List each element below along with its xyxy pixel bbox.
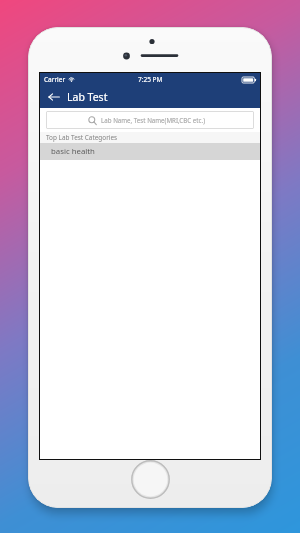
button[interactable]: basic health <box>40 143 260 160</box>
staticText: Lab Test <box>67 90 108 104</box>
button[interactable]: Back <box>45 88 63 106</box>
staticText: Top Lab Test Categories <box>46 133 118 142</box>
staticText: basic health <box>51 146 95 157</box>
button[interactable]: Lab Name, Test Name(MRI,CBC etc.) <box>46 111 254 129</box>
staticText: Lab Name, Test Name(MRI,CBC etc.) <box>101 116 206 124</box>
staticText: 7:25 PM <box>138 75 163 84</box>
staticText: Carrier <box>44 75 66 84</box>
